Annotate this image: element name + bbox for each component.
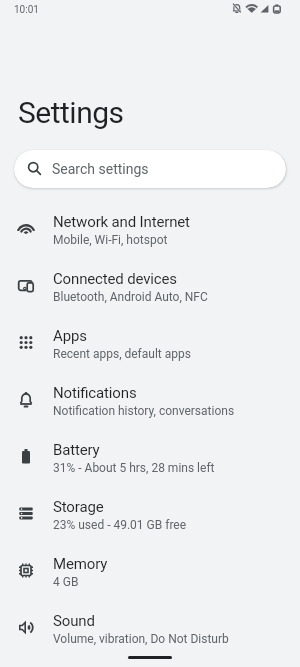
- button[interactable]: Sound: [0, 607, 300, 664]
- button[interactable]: Search settings: [14, 150, 286, 188]
- button[interactable]: Notifications: [0, 379, 300, 436]
- staticText: Search settings: [52, 161, 149, 177]
- staticText: Mobile, Wi-Fi, hotspot: [53, 233, 168, 247]
- staticText: Notification history, conversations: [53, 404, 235, 418]
- staticText: Storage: [53, 498, 104, 516]
- button[interactable]: Apps: [0, 322, 300, 379]
- staticText: Volume, vibration, Do Not Disturb: [53, 632, 229, 646]
- staticText: Notifications: [53, 384, 137, 402]
- staticText: 23% used - 49.01 GB free: [53, 518, 187, 532]
- staticText: Connected devices: [53, 270, 177, 288]
- staticText: Apps: [53, 327, 87, 345]
- staticText: Battery: [53, 441, 100, 459]
- staticText: 4 GB: [53, 575, 79, 589]
- staticText: Settings: [18, 95, 124, 130]
- button[interactable]: Storage: [0, 493, 300, 550]
- staticText: 10:01: [14, 4, 39, 16]
- staticText: 31% - About 5 hrs, 28 mins left: [53, 461, 215, 475]
- button[interactable]: Battery: [0, 436, 300, 493]
- staticText: Sound: [53, 612, 95, 630]
- button[interactable]: Connected devices: [0, 265, 300, 322]
- staticText: Recent apps, default apps: [53, 347, 191, 361]
- staticText: Memory: [53, 555, 108, 573]
- staticText: Network and Internet: [53, 213, 190, 231]
- button[interactable]: Memory: [0, 550, 300, 607]
- staticText: Bluetooth, Android Auto, NFC: [53, 290, 208, 304]
- button[interactable]: Network and Internet: [0, 208, 300, 265]
